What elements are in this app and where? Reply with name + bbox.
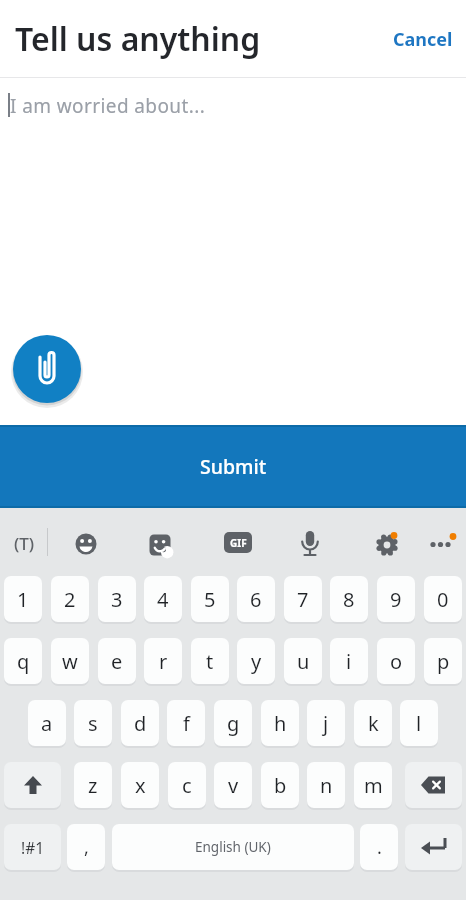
button[interactable]: j	[307, 700, 345, 746]
staticText: 0	[437, 586, 449, 613]
button[interactable]: r	[144, 638, 182, 684]
button[interactable]: b	[261, 762, 299, 808]
button[interactable]: v	[214, 762, 252, 808]
staticText: .	[377, 835, 382, 860]
staticText: 1	[17, 586, 29, 613]
button[interactable]: 4	[144, 576, 182, 622]
staticText: x	[135, 772, 146, 799]
staticText: Submit	[200, 453, 267, 480]
staticText: b	[274, 772, 287, 799]
button[interactable]: h	[261, 700, 299, 746]
button[interactable]: Cancel	[393, 27, 453, 52]
button[interactable]: ,	[67, 824, 105, 870]
button[interactable]: q	[4, 638, 42, 684]
button[interactable]: g	[214, 700, 252, 746]
staticText: Tell us anything	[15, 17, 261, 61]
staticText: !#1	[21, 837, 45, 858]
button[interactable]: 3	[98, 576, 136, 622]
staticText: s	[88, 710, 98, 737]
staticText: 5	[204, 586, 216, 613]
button[interactable]	[13, 335, 81, 403]
button[interactable]: Submit	[0, 425, 466, 508]
staticText: z	[88, 772, 98, 799]
staticText: Cancel	[393, 27, 453, 52]
staticText: n	[320, 772, 333, 799]
button[interactable]: o	[377, 638, 415, 684]
button[interactable]	[373, 529, 403, 559]
staticText: 3	[111, 586, 123, 613]
button[interactable]: a	[28, 700, 66, 746]
button[interactable]: English (UK)	[112, 824, 354, 870]
button[interactable]: x	[121, 762, 159, 808]
staticText: l	[416, 710, 422, 737]
button[interactable]	[424, 530, 458, 558]
button[interactable]	[405, 762, 462, 808]
button[interactable]: z	[74, 762, 112, 808]
button[interactable]: s	[74, 700, 112, 746]
staticText: e	[111, 648, 123, 675]
staticText: i	[346, 648, 352, 675]
staticText: 6	[250, 586, 262, 613]
staticText: ,	[84, 835, 89, 860]
button[interactable]	[405, 824, 462, 870]
button[interactable]: f	[167, 700, 205, 746]
staticText: p	[437, 648, 450, 675]
staticText: I am worried about...	[10, 93, 206, 119]
button[interactable]: 7	[284, 576, 322, 622]
button[interactable]	[296, 530, 324, 558]
staticText: 9	[390, 586, 402, 613]
button[interactable]	[71, 529, 101, 559]
staticText: k	[368, 710, 379, 737]
button[interactable]: 2	[51, 576, 89, 622]
staticText: w	[62, 648, 78, 675]
staticText: 8	[343, 586, 355, 613]
button[interactable]: 9	[377, 576, 415, 622]
button[interactable]: m	[354, 762, 392, 808]
staticText: h	[274, 710, 287, 737]
staticText: c	[182, 772, 192, 799]
staticText: j	[323, 710, 329, 737]
staticText: d	[134, 710, 147, 737]
button[interactable]: p	[424, 638, 462, 684]
button[interactable]: 0	[424, 576, 462, 622]
button[interactable]: w	[51, 638, 89, 684]
staticText: (T)	[14, 532, 35, 555]
button[interactable]: GIF	[224, 532, 252, 553]
staticText: 7	[297, 586, 309, 613]
staticText: GIF	[230, 536, 247, 550]
staticText: o	[390, 648, 403, 675]
staticText: 4	[157, 586, 169, 613]
staticText: g	[227, 710, 240, 737]
staticText: English (UK)	[195, 838, 271, 856]
staticText: y	[251, 648, 262, 675]
button[interactable]: .	[360, 824, 398, 870]
button[interactable]: c	[168, 762, 206, 808]
button[interactable]: t	[191, 638, 229, 684]
button[interactable]: 5	[191, 576, 229, 622]
staticText: v	[228, 772, 239, 799]
button[interactable]: e	[98, 638, 136, 684]
staticText: a	[41, 710, 53, 737]
staticText: t	[206, 648, 214, 675]
staticText: q	[17, 648, 30, 675]
button[interactable]: d	[121, 700, 159, 746]
staticText: m	[364, 772, 383, 799]
staticText: u	[297, 648, 310, 675]
button[interactable]: y	[237, 638, 275, 684]
button[interactable]: !#1	[4, 824, 61, 870]
staticText: 2	[64, 586, 76, 613]
button[interactable]	[145, 530, 175, 560]
button[interactable]	[4, 762, 61, 808]
button[interactable]: 6	[237, 576, 275, 622]
button[interactable]: k	[354, 700, 392, 746]
button[interactable]: n	[307, 762, 345, 808]
staticText: r	[159, 648, 168, 675]
button[interactable]: (T)	[6, 528, 43, 558]
button[interactable]: l	[400, 700, 438, 746]
button[interactable]: u	[284, 638, 322, 684]
staticText: f	[183, 710, 190, 737]
button[interactable]: 1	[4, 576, 42, 622]
button[interactable]: 8	[330, 576, 368, 622]
button[interactable]: i	[330, 638, 368, 684]
